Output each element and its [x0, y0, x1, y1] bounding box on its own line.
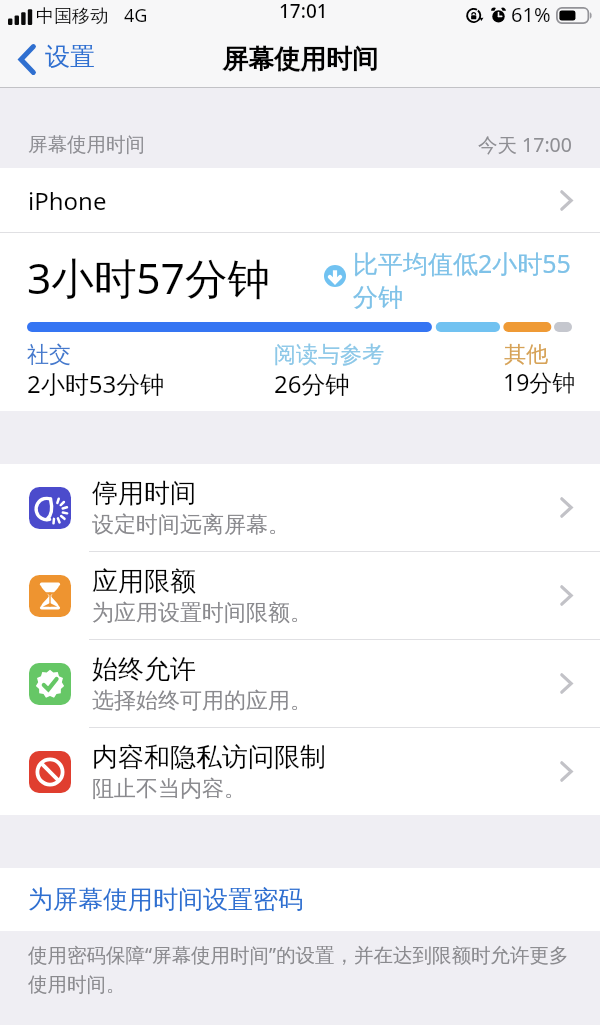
staticText: 比平均值低2小时55分钟 [353, 246, 577, 313]
staticText: 始终允许 [92, 653, 196, 686]
button[interactable]: iPhone [0, 168, 600, 232]
staticText: 中国移动 [36, 5, 108, 28]
staticText: 选择始终可用的应用。 [92, 687, 312, 715]
staticText: 阻止不当内容。 [92, 775, 246, 803]
staticText: 19分钟 [503, 366, 576, 397]
button[interactable]: 始终允许 [0, 640, 600, 727]
staticText: 其他 [504, 341, 548, 369]
staticText: 3小时57分钟 [27, 249, 270, 307]
staticText: 应用限额 [92, 565, 196, 598]
staticText: iPhone [28, 184, 107, 217]
staticText: 设置 [45, 41, 95, 72]
staticText: 17:01 [279, 0, 328, 24]
button[interactable]: 为屏幕使用时间设置密码 [0, 868, 600, 931]
staticText: 今天 17:00 [478, 131, 572, 158]
button[interactable]: 停用时间 [0, 464, 600, 551]
staticText: 4G [124, 3, 148, 28]
button[interactable]: 设置 [0, 40, 105, 79]
staticText: 内容和隐私访问限制 [92, 741, 326, 774]
staticText: 为应用设置时间限额。 [92, 599, 312, 627]
staticText: 26分钟 [274, 367, 350, 400]
staticText: 社交 [27, 341, 71, 369]
staticText: 停用时间 [92, 477, 196, 510]
staticText: 使用时间。 [28, 972, 126, 997]
staticText: 屏幕使用时间 [222, 43, 378, 76]
other: Alarm [490, 7, 507, 24]
other: Rotation lock [465, 6, 484, 25]
staticText: 为屏幕使用时间设置密码 [28, 884, 303, 915]
staticText: 屏幕使用时间 [28, 132, 145, 157]
button[interactable]: 内容和隐私访问限制 [0, 728, 600, 815]
staticText: 设定时间远离屏幕。 [92, 511, 290, 539]
staticText: 阅读与参考 [274, 341, 384, 369]
staticText: 使用密码保障“屏幕使用时间”的设置，并在达到限额时允许更多 [28, 941, 569, 968]
staticText: 61% [511, 1, 551, 28]
staticText: 2小时53分钟 [27, 367, 165, 400]
button[interactable]: 应用限额 [0, 552, 600, 639]
